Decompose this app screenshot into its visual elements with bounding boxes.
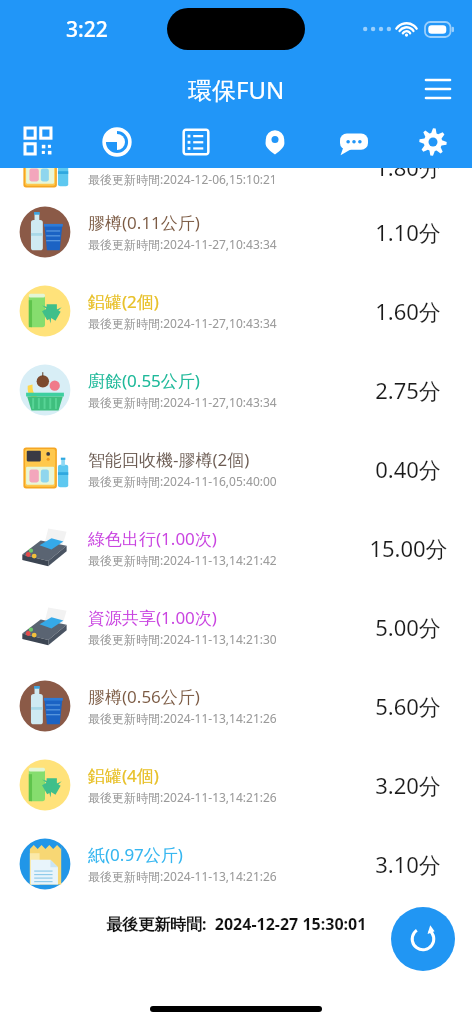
- staticText: 最後更新時間:2024-11-13,14:21:30: [88, 631, 277, 647]
- staticText: 15.00分: [369, 533, 448, 563]
- button[interactable]: 智能回收機-膠樽(2個): [0, 429, 472, 508]
- button[interactable]: 綠色出行(1.00次): [0, 508, 472, 587]
- staticText: 綠色出行(1.00次): [88, 527, 217, 550]
- staticText: 鋁罐(2個): [88, 290, 159, 313]
- button[interactable]: Locations: [235, 116, 314, 168]
- button[interactable]: QR code: [0, 116, 78, 168]
- staticText: 1.60分: [375, 296, 441, 326]
- staticText: 2.75分: [375, 375, 441, 405]
- button[interactable]: 鋁罐(4個): [0, 745, 472, 824]
- button[interactable]: 鋁罐(2個): [0, 271, 472, 350]
- staticText: 最後更新時間:2024-12-06,15:10:21: [88, 171, 277, 187]
- staticText: 膠樽(0.56公斤): [88, 685, 200, 708]
- staticText: 廚餘(0.55公斤): [88, 369, 200, 392]
- staticText: 智能回收機-膠樽(9個): [88, 146, 250, 169]
- button[interactable]: Refresh: [391, 907, 455, 971]
- button[interactable]: 膠樽(0.56公斤): [0, 666, 472, 745]
- staticText: 最後更新時間:2024-11-27,10:43:34: [88, 394, 277, 410]
- staticText: 膠樽(0.11公斤): [88, 211, 200, 234]
- staticText: 3:22: [66, 15, 108, 44]
- staticText: 5.00分: [375, 612, 441, 642]
- staticText: 環保FUN: [188, 73, 285, 106]
- staticText: 5.60分: [375, 691, 441, 721]
- staticText: 最後更新時間:2024-11-13,14:21:26: [88, 710, 277, 726]
- staticText: 0.40分: [375, 454, 441, 484]
- staticText: 最後更新時間: 2024-12-27 15:30:01: [106, 913, 367, 935]
- staticText: 3.10分: [375, 849, 441, 879]
- staticText: 最後更新時間:2024-11-27,10:43:34: [88, 236, 277, 252]
- staticText: 1.80分: [375, 152, 441, 182]
- staticText: 3.20分: [375, 770, 441, 800]
- button[interactable]: 膠樽(0.11公斤): [0, 192, 472, 271]
- button[interactable]: Messages: [314, 116, 393, 168]
- staticText: 1.10分: [375, 217, 441, 247]
- button[interactable]: 智能回收機-膠樽(9個): [0, 141, 472, 192]
- button[interactable]: Records: [156, 116, 235, 168]
- staticText: 鋁罐(4個): [88, 764, 159, 787]
- staticText: 最後更新時間:2024-11-13,14:21:26: [88, 868, 277, 884]
- button[interactable]: Statistics: [78, 116, 156, 168]
- button[interactable]: 廚餘(0.55公斤): [0, 350, 472, 429]
- staticText: 資源共享(1.00次): [88, 606, 217, 629]
- staticText: 智能回收機-膠樽(2個): [88, 448, 250, 471]
- staticText: 最後更新時間:2024-11-16,05:40:00: [88, 473, 277, 489]
- staticText: 紙(0.97公斤): [88, 843, 183, 866]
- button[interactable]: Settings: [393, 116, 472, 168]
- button[interactable]: Menu: [420, 71, 456, 107]
- button[interactable]: 紙(0.97公斤): [0, 824, 472, 903]
- staticText: 最後更新時間:2024-11-13,14:21:26: [88, 789, 277, 805]
- staticText: 最後更新時間:2024-11-13,14:21:42: [88, 552, 277, 568]
- staticText: 最後更新時間:2024-11-27,10:43:34: [88, 315, 277, 331]
- button[interactable]: 資源共享(1.00次): [0, 587, 472, 666]
